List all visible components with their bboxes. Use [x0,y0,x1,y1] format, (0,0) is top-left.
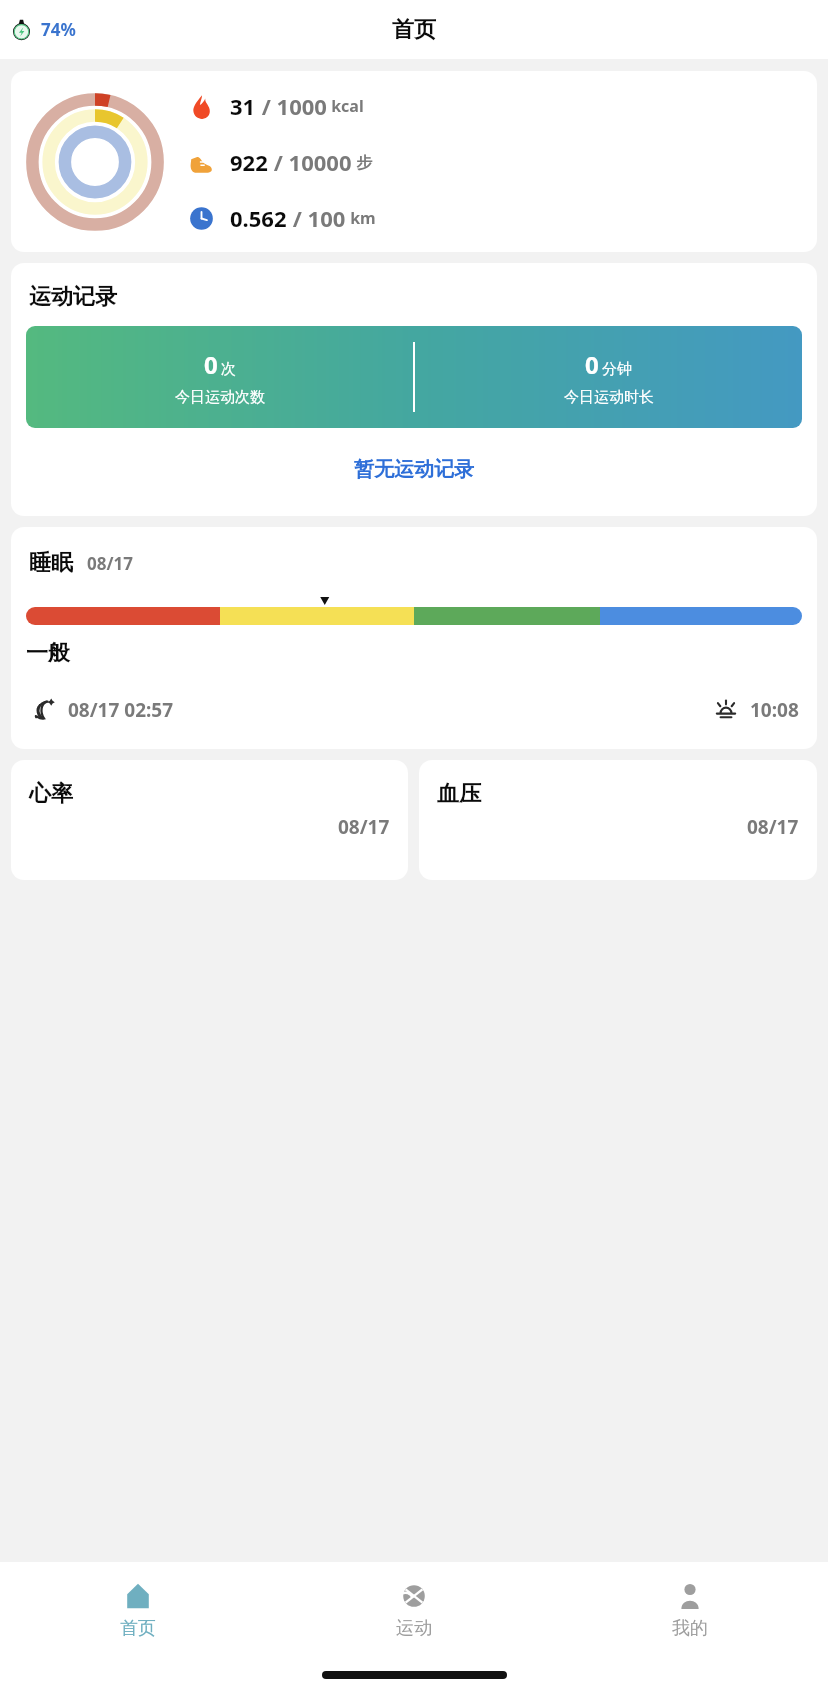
staticText: 74% [41,18,76,41]
staticText: 次 [221,360,236,379]
staticText: 今日运动次数 [175,388,265,407]
staticText: 0 [204,348,218,381]
staticText: 分钟 [602,360,632,379]
staticText: / 10000 [268,147,352,177]
button[interactable]: 心率 [11,760,408,880]
button[interactable]: 血压 [419,760,817,880]
button[interactable]: 我的 [552,1562,828,1655]
button[interactable]: 31 [11,71,817,252]
staticText: km [346,207,376,229]
staticText: 步 [352,151,373,173]
staticText: 首页 [120,1617,156,1640]
button[interactable]: 首页 [0,1562,276,1655]
staticText: 922 [230,147,268,177]
staticText: 运动 [396,1617,432,1640]
button[interactable]: 运动记录 [11,263,817,516]
staticText: 心率 [29,780,73,808]
staticText: / 1000 [256,91,327,121]
button[interactable]: 74% [7,16,79,43]
staticText: kcal [327,95,364,117]
staticText: 血压 [437,780,481,808]
staticText: 08/17 [747,814,799,840]
staticText: 一般 [26,639,70,667]
button[interactable]: 运动 [276,1562,552,1655]
staticText: 31 [230,91,256,121]
staticText: 运动记录 [29,283,117,311]
staticText: 08/17 [338,814,390,840]
staticText: 08/17 [87,552,133,575]
staticText: 0.562 [230,203,287,233]
staticText: 一般 [26,639,333,667]
staticText: 08/17 02:57 [68,697,174,723]
staticText: 睡眠 [29,549,73,577]
staticText: / 100 [287,203,346,233]
button[interactable]: 暂无运动记录 [348,451,480,488]
staticText: 0 [585,348,599,381]
staticText: 10:08 [750,697,799,723]
staticText: 今日运动时长 [564,388,654,407]
staticText: 首页 [392,16,436,44]
button[interactable]: 睡眠 [11,527,817,749]
staticText: 我的 [672,1617,708,1640]
